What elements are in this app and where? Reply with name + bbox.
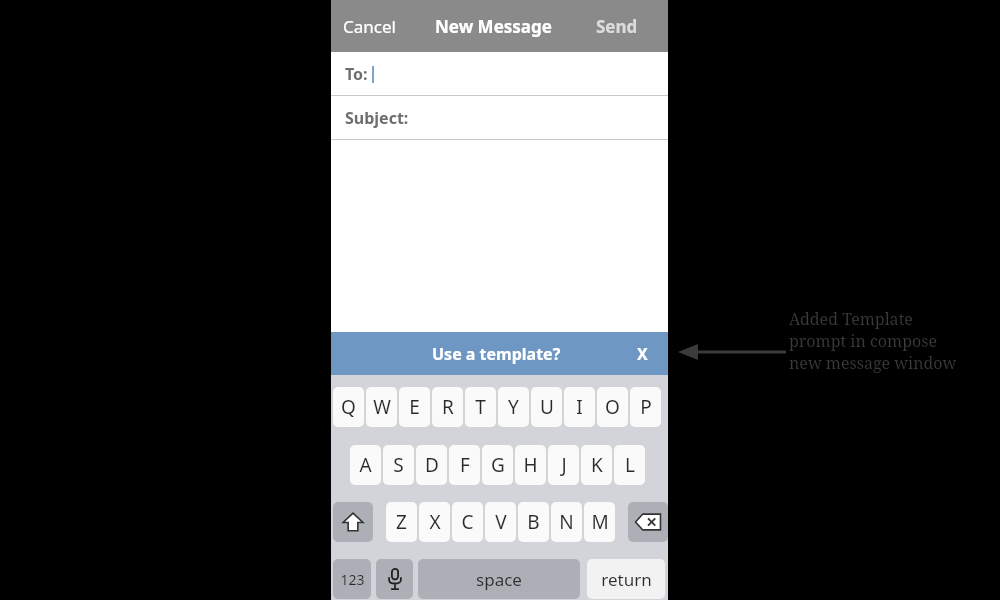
staticText: A (359, 452, 372, 478)
button[interactable]: C (452, 502, 483, 542)
button[interactable]: L (614, 445, 645, 485)
button[interactable]: S (383, 445, 414, 485)
staticText: prompt in compose (789, 330, 937, 352)
staticText: B (527, 509, 540, 535)
staticText: Subject: (345, 107, 409, 129)
staticText: Q (341, 394, 356, 420)
staticText: F (460, 452, 470, 478)
button[interactable]: Z (386, 502, 417, 542)
button[interactable]: Dismiss template prompt (637, 343, 648, 365)
button[interactable]: Cancel (343, 15, 396, 38)
staticText: R (442, 394, 454, 420)
staticText: L (625, 452, 635, 478)
staticText: V (495, 509, 507, 535)
button[interactable]: T (465, 387, 496, 427)
button[interactable]: Voice input (376, 559, 413, 599)
button[interactable]: B (518, 502, 549, 542)
button[interactable]: W (366, 387, 397, 427)
button[interactable]: Use a template? (331, 332, 668, 375)
button[interactable]: To: (331, 52, 668, 96)
button[interactable]: Y (498, 387, 529, 427)
button[interactable]: D (416, 445, 447, 485)
staticText: D (425, 452, 439, 478)
button[interactable]: E (399, 387, 430, 427)
button[interactable]: space (418, 559, 580, 599)
staticText: O (605, 394, 620, 420)
button[interactable]: P (630, 387, 661, 427)
button[interactable]: A (350, 445, 381, 485)
staticText: Use a template? (432, 343, 561, 365)
button[interactable]: X (419, 502, 450, 542)
button[interactable]: Backspace (628, 502, 668, 542)
button[interactable]: Q (333, 387, 364, 427)
staticText: Y (508, 394, 519, 420)
staticText: E (409, 394, 420, 420)
button[interactable]: M (584, 502, 615, 542)
staticText: W (373, 394, 391, 420)
button[interactable]: K (581, 445, 612, 485)
staticText: New Message (435, 15, 552, 38)
staticText: space (476, 568, 522, 591)
staticText: G (491, 452, 505, 478)
button[interactable]: return (587, 559, 665, 599)
staticText: Send (596, 15, 638, 38)
staticText: S (393, 452, 404, 478)
staticText: N (559, 509, 574, 535)
staticText: H (523, 452, 538, 478)
staticText: P (640, 394, 652, 420)
staticText: 123 (340, 570, 365, 589)
button[interactable]: J (548, 445, 579, 485)
button[interactable]: F (449, 445, 480, 485)
button[interactable]: G (482, 445, 513, 485)
button[interactable]: V (485, 502, 516, 542)
button[interactable]: O (597, 387, 628, 427)
button[interactable]: H (515, 445, 546, 485)
staticText: X (637, 343, 648, 365)
staticText: T (475, 394, 486, 420)
button[interactable]: Subject: (331, 96, 668, 140)
button[interactable]: I (564, 387, 595, 427)
staticText: C (461, 509, 474, 535)
staticText: X (429, 509, 441, 535)
staticText: J (561, 452, 567, 478)
button[interactable]: 123 (333, 559, 371, 599)
staticText: To: (345, 63, 372, 85)
staticText: M (591, 509, 609, 535)
button[interactable]: U (531, 387, 562, 427)
staticText: new message window (789, 352, 957, 374)
staticText: Z (396, 509, 407, 535)
button[interactable]: Send (596, 15, 638, 38)
staticText: Added Template (789, 308, 913, 330)
staticText: U (540, 394, 554, 420)
staticText: Cancel (343, 15, 396, 38)
staticText: K (591, 452, 603, 478)
button[interactable]: N (551, 502, 582, 542)
staticText: I (576, 394, 583, 420)
staticText: return (601, 568, 652, 591)
button[interactable]: Shift (333, 502, 373, 542)
button[interactable]: R (432, 387, 463, 427)
